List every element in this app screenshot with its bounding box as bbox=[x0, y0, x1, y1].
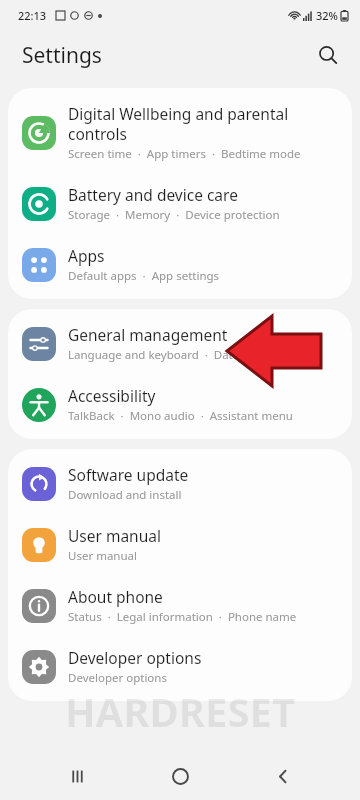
staticText: Download and install bbox=[68, 487, 182, 503]
button[interactable]: Back bbox=[257, 752, 309, 800]
staticText: HARDRESET bbox=[0, 684, 360, 738]
staticText: User manual bbox=[68, 525, 161, 546]
staticText: Status · Legal information · Phone name bbox=[68, 609, 297, 625]
staticText: Screen time · App timers · Bedtime mode bbox=[68, 146, 301, 162]
staticText: 32% bbox=[316, 8, 338, 23]
staticText: TalkBack · Mono audio · Assistant menu bbox=[68, 408, 293, 424]
button[interactable]: Home bbox=[154, 752, 206, 800]
staticText: Accessibility bbox=[68, 385, 156, 406]
button[interactable]: Search settings bbox=[310, 37, 346, 73]
button[interactable]: General management bbox=[8, 313, 352, 374]
button[interactable]: Recent apps bbox=[51, 752, 103, 800]
button[interactable]: Battery and device care bbox=[8, 173, 352, 234]
staticText: Default apps · App settings bbox=[68, 268, 220, 284]
button[interactable]: Apps bbox=[8, 234, 352, 295]
staticText: 22:13 bbox=[18, 8, 47, 23]
staticText: About phone bbox=[68, 586, 163, 607]
staticText: General management bbox=[68, 324, 228, 345]
staticText: Storage · Memory · Device protection bbox=[68, 207, 280, 223]
button[interactable]: Accessibility bbox=[8, 374, 352, 435]
staticText: User manual bbox=[68, 548, 137, 564]
staticText: Battery and device care bbox=[68, 184, 238, 205]
staticText: Developer options bbox=[68, 670, 167, 686]
staticText: Developer options bbox=[68, 647, 202, 668]
staticText: Software update bbox=[68, 464, 189, 485]
button[interactable]: Digital Wellbeing and parental controls bbox=[8, 92, 352, 173]
staticText: Apps bbox=[68, 245, 105, 266]
button[interactable]: User manual bbox=[8, 514, 352, 575]
staticText: Language and keyboard · Date and time bbox=[68, 347, 291, 363]
staticText: Digital Wellbeing and parental controls bbox=[68, 103, 289, 144]
button[interactable]: Software update bbox=[8, 453, 352, 514]
button[interactable]: About phone bbox=[8, 575, 352, 636]
staticText: Settings bbox=[22, 41, 102, 70]
button[interactable]: Developer options bbox=[8, 636, 352, 697]
